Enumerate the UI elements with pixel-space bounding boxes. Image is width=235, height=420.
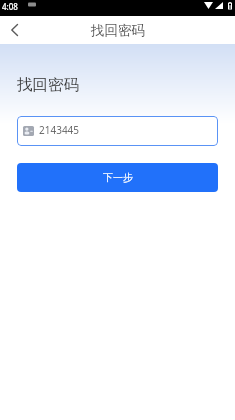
staticText: 4:08	[2, 1, 18, 12]
staticText: 下一步	[103, 171, 133, 184]
staticText: 2143445	[39, 123, 80, 137]
staticText: 找回密码	[91, 22, 145, 39]
staticText: 找回密码	[17, 75, 79, 95]
button[interactable]: Back	[0, 16, 28, 44]
button[interactable]: 2143445	[17, 116, 218, 146]
button[interactable]: 下一步	[17, 163, 218, 192]
